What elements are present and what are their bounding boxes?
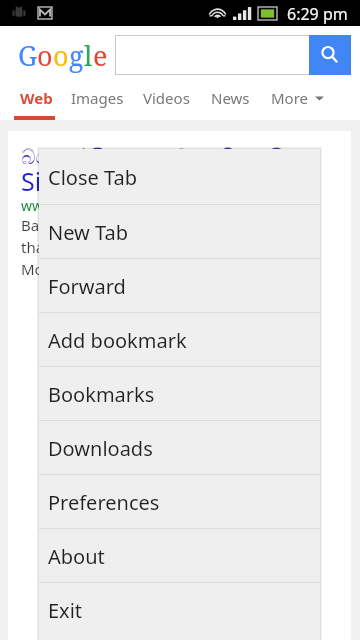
staticText: Videos	[143, 88, 190, 108]
staticText: Sinhala News Today	[45, 409, 231, 436]
button[interactable]: More	[265, 86, 330, 110]
staticText: Sinhala Fonts Download	[45, 483, 271, 510]
staticText: www.sinhalanews.lk	[45, 441, 177, 460]
staticText: 6:29 pm	[287, 3, 348, 25]
staticText: News	[211, 88, 250, 108]
staticText: www.sinhalablog.com	[21, 196, 166, 215]
staticText: Bookmarks	[48, 381, 155, 408]
staticText: Add bookmark	[48, 327, 187, 354]
button[interactable]: Close Tab	[39, 149, 320, 205]
staticText: More	[271, 88, 309, 108]
button[interactable]: Bookmarks	[39, 367, 320, 421]
button[interactable]: Images	[65, 86, 130, 110]
staticText: o	[37, 37, 53, 74]
staticText: Sinhala Blog Sindu	[21, 164, 240, 198]
staticText: Preferences	[48, 489, 160, 516]
staticText: Images	[71, 88, 124, 108]
staticText: www.sinhalaunicode.lk	[45, 337, 196, 356]
staticText: G	[18, 37, 37, 74]
button[interactable]: New Tab	[39, 205, 320, 259]
staticText: o	[53, 37, 69, 74]
staticText: About	[48, 543, 105, 570]
button[interactable]: Preferences	[39, 475, 320, 529]
button[interactable]: Search query	[115, 35, 310, 75]
staticText: l	[84, 37, 93, 74]
button[interactable]: News	[205, 86, 256, 110]
button[interactable]: Exit	[39, 583, 320, 637]
staticText: බ්ලොග් සිංහල වෙබ් අඩවිය ලිපි	[21, 143, 284, 170]
staticText: e	[93, 37, 108, 74]
button[interactable]: About	[39, 529, 320, 583]
staticText: Close Tab	[48, 164, 137, 191]
staticText: Web	[20, 88, 53, 108]
staticText: Back to the Sinhala blog list of all tha…	[21, 215, 257, 280]
staticText: Downloads	[48, 435, 153, 462]
button[interactable]: Forward	[39, 259, 320, 313]
staticText: g	[69, 37, 84, 74]
staticText: Forward	[48, 273, 126, 300]
button[interactable]: Downloads	[39, 421, 320, 475]
button[interactable]: Videos	[137, 86, 196, 110]
staticText: Exit	[48, 597, 83, 624]
button[interactable]: Add bookmark	[39, 313, 320, 367]
staticText: Sinhala Unicode Converter	[45, 313, 295, 340]
staticText: New Tab	[48, 219, 129, 246]
button[interactable]: Web	[14, 86, 59, 110]
button[interactable]: Search	[309, 35, 351, 75]
